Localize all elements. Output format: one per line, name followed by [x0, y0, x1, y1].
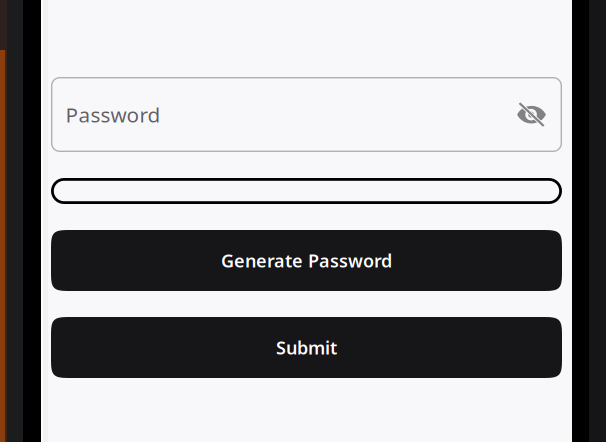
button[interactable]: Submit	[51, 317, 562, 378]
staticText: Submit	[276, 335, 337, 360]
button[interactable]: Hide password	[516, 102, 546, 127]
staticText: Generate Password	[221, 248, 392, 273]
button[interactable]: Generate Password	[51, 230, 562, 291]
staticText: Password	[65, 100, 160, 128]
